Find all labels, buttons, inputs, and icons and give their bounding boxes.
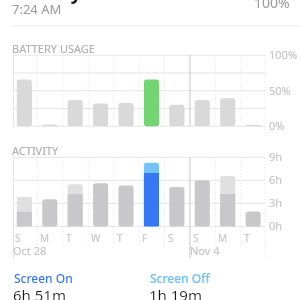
staticText: 3h [269, 195, 283, 210]
staticText: 100% [269, 47, 298, 62]
staticText: 1h 19m [149, 285, 202, 300]
staticText: S [15, 231, 21, 245]
staticText: M [218, 231, 228, 245]
staticText: T [117, 231, 123, 245]
staticText: 100% [254, 0, 290, 12]
staticText: ACTIVITY [12, 143, 59, 158]
button[interactable]: Screen Off [149, 270, 281, 300]
staticText: Oct 28 [13, 243, 47, 258]
staticText: 9h [269, 149, 283, 164]
staticText: Screen Off [150, 270, 210, 286]
staticText: 50% [269, 83, 291, 98]
staticText: F [142, 231, 148, 245]
staticText: 6h 51m [13, 285, 66, 300]
staticText: 0% [269, 118, 285, 133]
staticText: T [244, 231, 250, 245]
staticText: S [168, 231, 174, 245]
staticText: S [193, 231, 199, 245]
staticText: M [40, 231, 50, 245]
staticText: T [66, 231, 72, 245]
staticText: Battery [7, 0, 82, 5]
staticText: 6h [269, 172, 283, 187]
staticText: 0h [269, 218, 283, 233]
staticText: Screen On [14, 270, 73, 286]
staticText: 7:24 AM [12, 0, 62, 18]
button[interactable]: Screen On [13, 270, 145, 300]
staticText: BATTERY USAGE [12, 41, 95, 56]
staticText: W [91, 231, 101, 245]
staticText: Nov 4 [190, 243, 220, 258]
